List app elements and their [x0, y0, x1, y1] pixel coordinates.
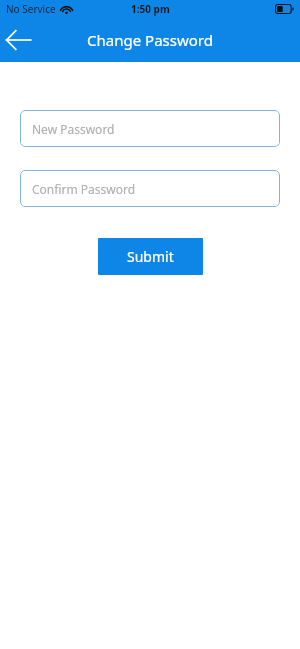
staticText: No Service — [6, 2, 56, 16]
staticText: Confirm Password — [32, 181, 136, 197]
staticText: Change Password — [0, 30, 300, 50]
button[interactable]: New Password — [20, 110, 280, 147]
staticText: New Password — [32, 121, 115, 137]
button[interactable]: Back — [0, 20, 44, 60]
button[interactable]: Submit — [98, 238, 203, 275]
staticText: 1:50 pm — [131, 2, 170, 16]
button[interactable]: Confirm Password — [20, 170, 280, 207]
staticText: Submit — [127, 247, 174, 266]
